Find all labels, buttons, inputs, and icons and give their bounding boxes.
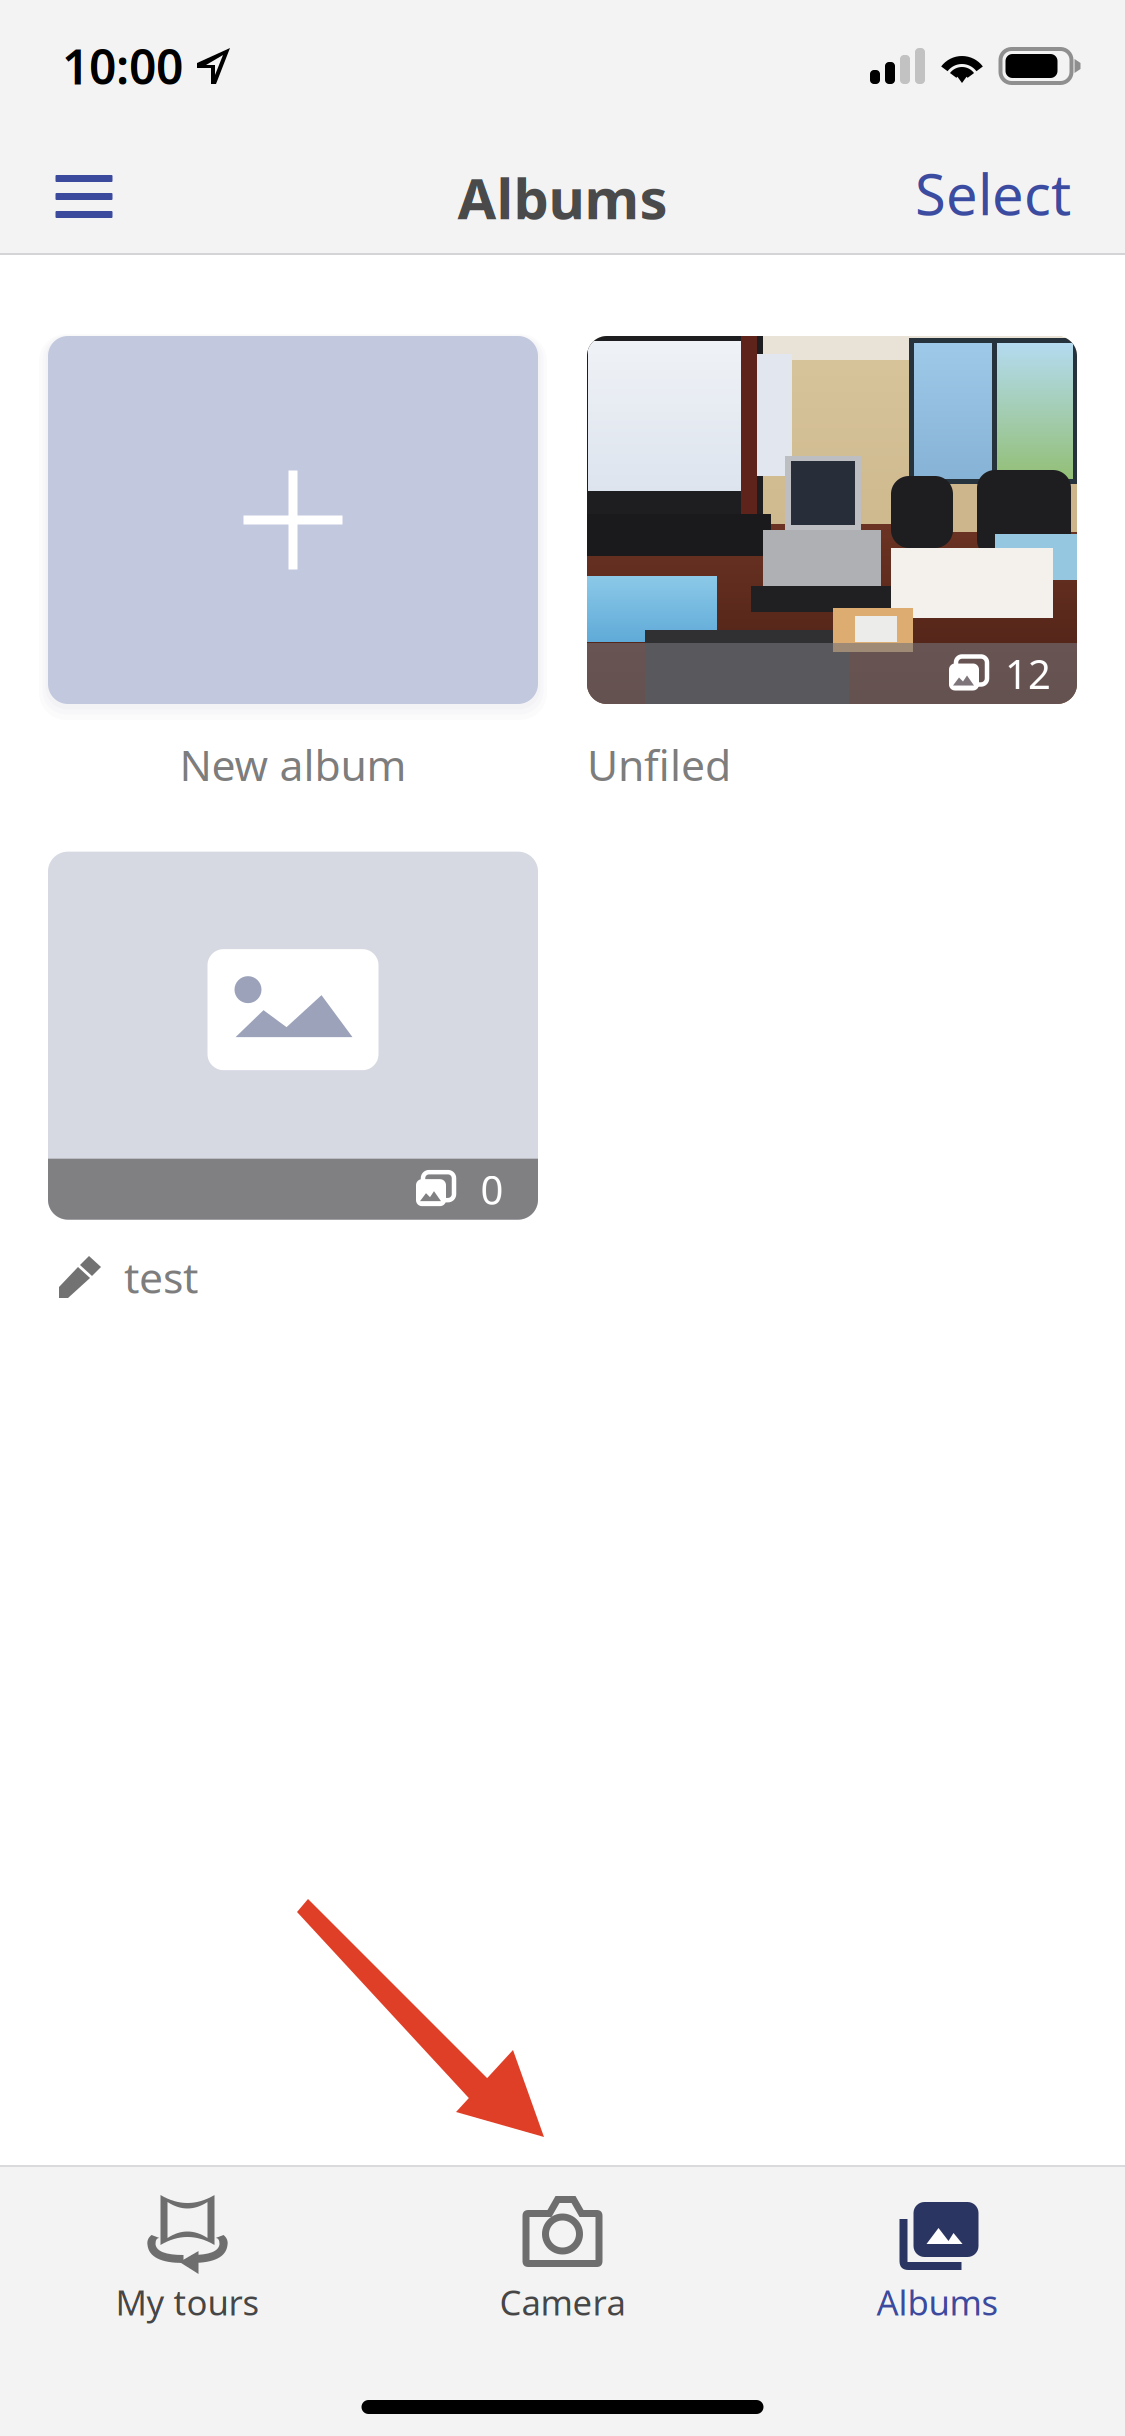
button[interactable]: Albums xyxy=(750,2195,1125,2325)
staticText: Select xyxy=(915,156,1071,231)
staticText: My tours xyxy=(115,2279,259,2325)
button[interactable]: 0 xyxy=(48,852,538,1305)
staticText: 0 xyxy=(480,1163,503,1216)
button[interactable]: Select xyxy=(915,132,1071,255)
button[interactable]: Camera xyxy=(375,2195,750,2325)
staticText: test xyxy=(124,1249,198,1305)
staticText: 12 xyxy=(1005,647,1051,700)
button[interactable]: 12 xyxy=(587,336,1077,793)
staticText: Unfiled xyxy=(587,736,731,793)
button[interactable]: New album xyxy=(48,336,538,793)
staticText: New album xyxy=(179,736,406,793)
staticText: Albums xyxy=(457,160,667,235)
staticText: Albums xyxy=(876,2279,998,2325)
button[interactable]: My tours xyxy=(0,2195,375,2325)
button[interactable]: Menu xyxy=(0,132,112,255)
staticText: 10:00 xyxy=(62,34,183,98)
staticText: Camera xyxy=(499,2279,625,2325)
